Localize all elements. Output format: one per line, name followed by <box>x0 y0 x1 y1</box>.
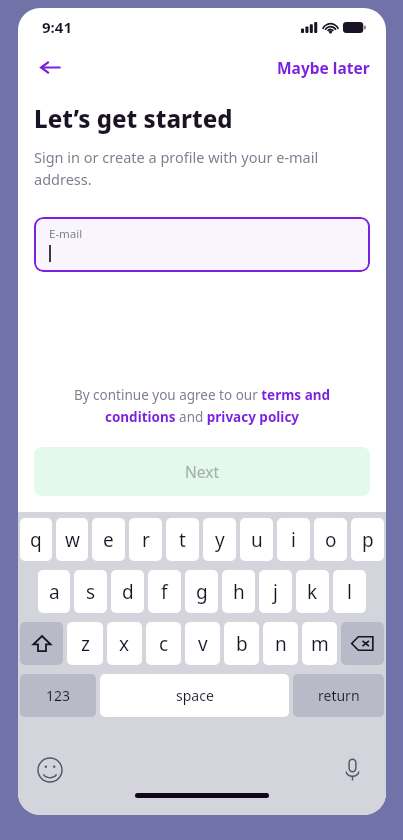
button[interactable]: a <box>38 570 70 613</box>
staticText: j <box>273 579 278 605</box>
staticText: m <box>311 631 329 657</box>
button[interactable]: f <box>148 570 181 613</box>
staticText: q <box>30 527 42 553</box>
staticText: Sign in or create a profile with your e-… <box>34 147 370 189</box>
button[interactable]: m <box>302 622 337 665</box>
staticText: 123 <box>46 686 71 705</box>
staticText: s <box>86 579 96 605</box>
staticText: k <box>307 579 318 605</box>
staticText: n <box>275 631 287 657</box>
staticText: v <box>198 631 208 657</box>
staticText: a <box>49 579 60 605</box>
button[interactable]: u <box>240 518 273 561</box>
button[interactable]: h <box>222 570 255 613</box>
staticText: c <box>159 631 169 657</box>
button[interactable]: e <box>92 518 125 561</box>
staticText: y <box>215 527 225 553</box>
button[interactable]: g <box>185 570 218 613</box>
button[interactable]: Back <box>28 46 72 88</box>
button[interactable]: E-mail <box>34 217 370 272</box>
staticText: r <box>142 527 150 553</box>
button[interactable]: t <box>166 518 199 561</box>
staticText: g <box>196 579 208 605</box>
staticText: return <box>318 686 360 705</box>
button[interactable]: c <box>146 622 181 665</box>
staticText: h <box>233 579 245 605</box>
button[interactable]: l <box>333 570 366 613</box>
staticText: Next <box>185 461 220 482</box>
staticText: o <box>325 527 337 553</box>
staticText: x <box>119 631 130 657</box>
staticText: Let’s get started <box>34 102 233 135</box>
button[interactable]: p <box>351 518 384 561</box>
staticText: i <box>291 527 296 553</box>
button[interactable]: d <box>111 570 144 613</box>
staticText: t <box>179 527 186 553</box>
button[interactable]: By continue you agree to our terms and c… <box>34 386 370 426</box>
button[interactable]: i <box>277 518 310 561</box>
staticText: Maybe later <box>277 57 370 78</box>
button[interactable]: j <box>259 570 292 613</box>
staticText: e <box>103 527 114 553</box>
staticText: space <box>176 686 214 705</box>
button[interactable]: Dictation <box>332 750 372 790</box>
staticText: f <box>161 579 168 605</box>
staticText: E-mail <box>49 226 83 242</box>
staticText: 9:41 <box>42 17 72 37</box>
button[interactable]: o <box>314 518 347 561</box>
button[interactable]: Backspace <box>341 622 384 665</box>
button[interactable]: Next <box>34 447 370 496</box>
button[interactable]: v <box>185 622 220 665</box>
staticText: p <box>362 527 374 553</box>
staticText: b <box>236 631 248 657</box>
button[interactable]: space <box>100 674 289 717</box>
staticText: w <box>65 527 80 553</box>
button[interactable]: z <box>67 622 103 665</box>
button[interactable]: n <box>263 622 298 665</box>
button[interactable]: Maybe later <box>261 49 386 86</box>
button[interactable]: Emoji <box>30 750 70 790</box>
staticText: u <box>251 527 263 553</box>
button[interactable]: r <box>129 518 162 561</box>
staticText: l <box>347 579 352 605</box>
button[interactable]: s <box>74 570 107 613</box>
staticText: d <box>122 579 134 605</box>
button[interactable]: y <box>203 518 236 561</box>
staticText: z <box>81 631 90 657</box>
button[interactable]: q <box>20 518 52 561</box>
button[interactable]: x <box>107 622 142 665</box>
button[interactable]: Shift <box>20 622 63 665</box>
button[interactable]: b <box>224 622 259 665</box>
button[interactable]: k <box>296 570 329 613</box>
button[interactable]: 123 <box>20 674 96 717</box>
button[interactable]: w <box>56 518 88 561</box>
button[interactable]: return <box>293 674 384 717</box>
